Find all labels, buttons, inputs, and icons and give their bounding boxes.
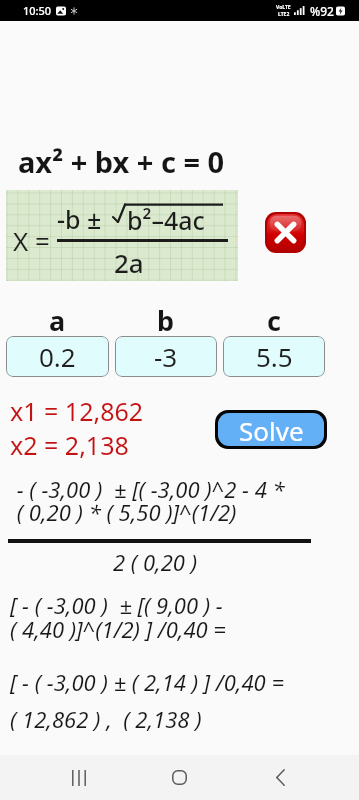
staticText: 5.5 — [256, 339, 293, 374]
button[interactable]: 0.2 — [6, 336, 109, 377]
staticText: ax² + bx + c = 0 — [18, 142, 225, 181]
button[interactable]: 5.5 — [223, 336, 325, 377]
button[interactable]: Home — [129, 755, 229, 800]
staticText: ( 12,862 ) , ( 2,138 ) — [10, 704, 202, 734]
staticText: VoLTE — [276, 4, 291, 11]
staticText: ( 4,40 )]^(1/2) ] /0,40 = — [10, 614, 226, 644]
staticText: [ - ( -3,00 ) ± [( 9,00 ) - — [10, 590, 223, 620]
staticText: b — [157, 302, 175, 339]
staticText: %92 — [310, 3, 334, 19]
staticText: 0.2 — [39, 339, 76, 374]
staticText: c — [267, 302, 281, 339]
staticText: 10:50 — [23, 3, 52, 18]
staticText: X = — [13, 223, 50, 258]
button[interactable]: Solve — [218, 413, 324, 446]
staticText: ( 0,20 ) * ( 5,50 )]^(1/2) — [11, 497, 237, 527]
staticText: LTE2 — [278, 11, 290, 18]
staticText: [ - ( -3,00 ) ± ( 2,14 ) ] /0,40 = — [10, 667, 284, 697]
staticText: b²–4ac — [127, 203, 205, 237]
staticText: x1 = 12,862 — [10, 394, 144, 428]
button[interactable]: Back — [230, 755, 330, 800]
button[interactable]: -3 — [115, 336, 217, 377]
staticText: x2 = 2,138 — [10, 428, 129, 462]
staticText: 2 ( 0,20 ) — [113, 547, 198, 577]
button[interactable]: Clear — [267, 214, 304, 251]
staticText: -b ± — [57, 202, 102, 236]
staticText: -3 — [154, 339, 178, 374]
staticText: Solve — [239, 413, 304, 446]
staticText: - ( -3,00 ) ± [( -3,00 )^2 - 4 * — [11, 474, 285, 504]
staticText: a — [49, 302, 66, 339]
staticText: 2a — [114, 245, 144, 280]
button[interactable]: Recents — [29, 755, 129, 800]
